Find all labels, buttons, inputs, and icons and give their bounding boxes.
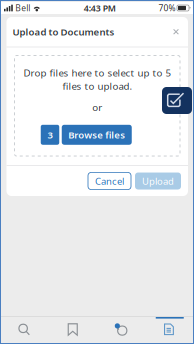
button[interactable]: Search <box>0 317 48 342</box>
button[interactable]: Close <box>168 24 184 40</box>
staticText: 4:43 PM <box>84 2 116 14</box>
button[interactable]: Cancel <box>88 172 131 189</box>
staticText: Cancel <box>95 175 124 187</box>
staticText: Upload to Documents <box>12 25 114 38</box>
button[interactable]: Bookmarks <box>48 317 97 342</box>
staticText: 3 <box>47 128 52 141</box>
staticText: Upload <box>142 175 174 187</box>
button[interactable]: Documents <box>145 317 194 342</box>
button[interactable]: Browse files <box>62 125 132 145</box>
button[interactable]: Select files <box>162 87 192 114</box>
button[interactable]: Recent activity <box>97 317 145 342</box>
staticText: 70% <box>158 2 175 14</box>
button[interactable]: 3 <box>41 125 59 145</box>
staticText: Browse files <box>68 128 125 141</box>
staticText: Drop files here to select up to 5 files … <box>23 66 171 92</box>
staticText: Bell <box>15 2 30 14</box>
button[interactable]: Upload <box>135 172 181 189</box>
staticText: or <box>92 100 102 114</box>
